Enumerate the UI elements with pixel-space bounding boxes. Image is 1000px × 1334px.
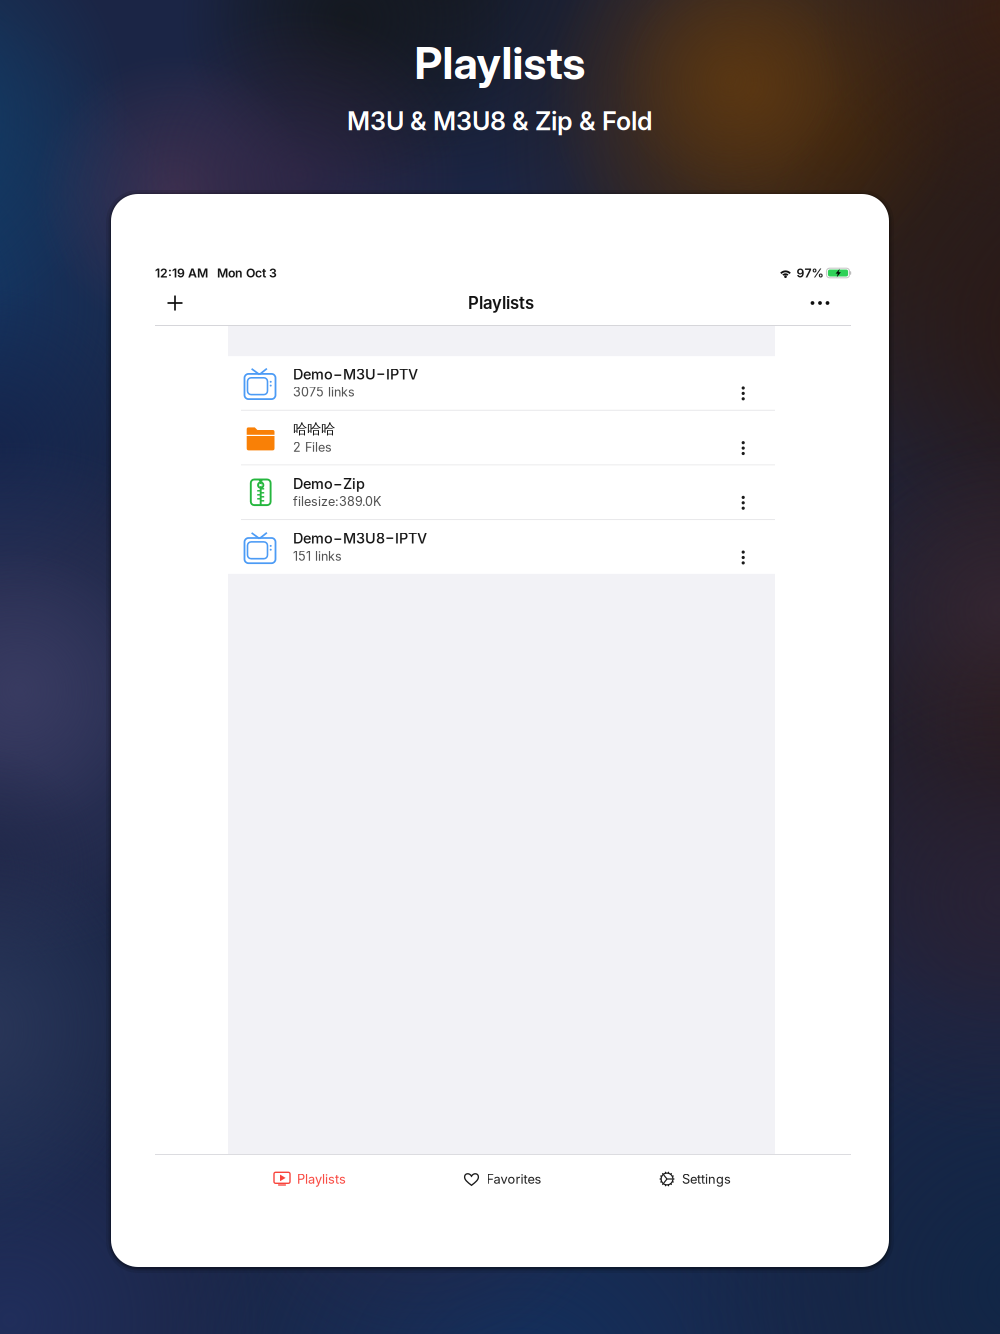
button[interactable]: Add playlist: [155, 283, 195, 323]
staticText: 12:19 AM: [155, 266, 208, 280]
button[interactable]: Row actions: [726, 537, 760, 577]
staticText: Demo−M3U8−IPTV: [293, 530, 427, 547]
button[interactable]: Settings: [620, 1156, 770, 1202]
button[interactable]: 哈哈哈: [228, 411, 775, 464]
staticText: 97%: [796, 266, 823, 280]
staticText: Demo−Zip: [293, 475, 365, 492]
staticText: 哈哈哈: [293, 420, 335, 438]
button[interactable]: Demo−M3U−IPTV: [228, 356, 775, 410]
staticText: 2 Files: [293, 439, 332, 455]
staticText: filesize:389.0K: [293, 494, 381, 509]
staticText: Playlists: [297, 1171, 346, 1187]
button[interactable]: Row actions: [726, 373, 760, 413]
staticText: Mon Oct 3: [217, 266, 277, 280]
button[interactable]: Demo−M3U8−IPTV: [228, 520, 775, 574]
button[interactable]: Row actions: [726, 483, 760, 523]
staticText: Playlists: [414, 36, 585, 90]
staticText: Playlists: [468, 293, 534, 313]
button[interactable]: More options: [800, 283, 840, 323]
staticText: 3075 links: [293, 384, 355, 400]
staticText: M3U & M3U8 & Zip & Fold: [347, 106, 653, 136]
staticText: Favorites: [486, 1171, 541, 1187]
staticText: Demo−M3U−IPTV: [293, 366, 418, 383]
button[interactable]: Row actions: [726, 428, 760, 468]
button[interactable]: Playlists: [235, 1156, 385, 1202]
staticText: 151 links: [293, 549, 342, 564]
button[interactable]: Favorites: [427, 1156, 577, 1202]
button[interactable]: Demo−Zip: [228, 465, 775, 519]
staticText: Settings: [682, 1171, 731, 1187]
